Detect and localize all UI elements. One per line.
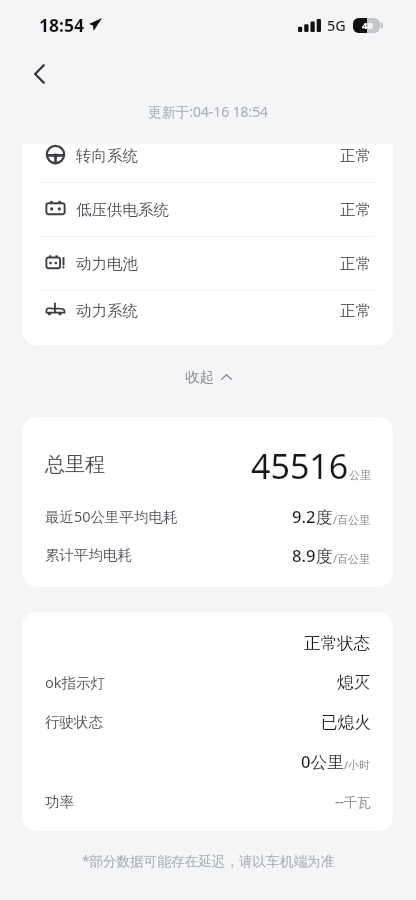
staticText: 动力电池 xyxy=(76,254,138,274)
staticText: 48 xyxy=(362,19,373,32)
staticText: 正常 xyxy=(340,254,371,274)
staticText: /百公里 xyxy=(333,512,371,527)
button[interactable]: 功率 xyxy=(45,790,371,814)
button[interactable]: ok指示灯 xyxy=(45,670,371,694)
button[interactable]: 行驶状态 xyxy=(45,710,371,734)
staticText: 正常 xyxy=(340,200,371,220)
staticText: 动力系统 xyxy=(76,301,138,321)
staticText: *部分数据可能存在延迟，请以车机端为准 xyxy=(82,851,335,870)
staticText: /百公里 xyxy=(333,551,371,566)
button[interactable]: 最近50公里平均电耗 xyxy=(45,504,371,528)
staticText: /小时 xyxy=(344,757,371,772)
button[interactable]: 低压供电系统 xyxy=(22,183,393,237)
staticText: 低压供电系统 xyxy=(76,200,169,220)
button[interactable]: 动力电池 xyxy=(22,237,393,291)
staticText: 公里 xyxy=(349,468,371,482)
button[interactable]: 累计平均电耗 xyxy=(45,543,371,567)
staticText: 正常 xyxy=(340,146,371,166)
staticText: 功率 xyxy=(45,793,74,811)
button[interactable]: 转向系统 xyxy=(22,144,393,183)
staticText: 18:54 xyxy=(39,13,84,37)
staticText: 收起 xyxy=(185,368,214,386)
staticText: 行驶状态 xyxy=(45,713,103,731)
staticText: 累计平均电耗 xyxy=(45,546,132,564)
staticText: ok指示灯 xyxy=(45,672,106,692)
button[interactable]: 动力系统 xyxy=(22,291,393,330)
staticText: 总里程 xyxy=(45,452,105,477)
staticText: 熄灭 xyxy=(337,672,371,693)
button[interactable]: 收起 xyxy=(169,362,248,392)
staticText: 最近50公里平均电耗 xyxy=(45,506,178,526)
staticText: 9.2度 xyxy=(292,505,333,528)
staticText: 正常 xyxy=(340,301,371,321)
staticText: 转向系统 xyxy=(76,146,138,166)
button[interactable]: Back xyxy=(19,54,59,94)
button[interactable]: 总里程 xyxy=(45,443,371,486)
button[interactable]: 正常状态 xyxy=(45,631,371,655)
staticText: 正常状态 xyxy=(304,633,371,654)
staticText: 8.9度 xyxy=(292,544,333,567)
staticText: 5G xyxy=(327,15,346,35)
button[interactable]: 0公里 xyxy=(45,749,371,773)
staticText: --千瓦 xyxy=(335,793,371,811)
staticText: 已熄火 xyxy=(321,712,371,733)
staticText: 45516 xyxy=(251,443,349,486)
staticText: 0公里 xyxy=(301,750,344,773)
staticText: 更新于:04-16 18:54 xyxy=(148,102,268,121)
